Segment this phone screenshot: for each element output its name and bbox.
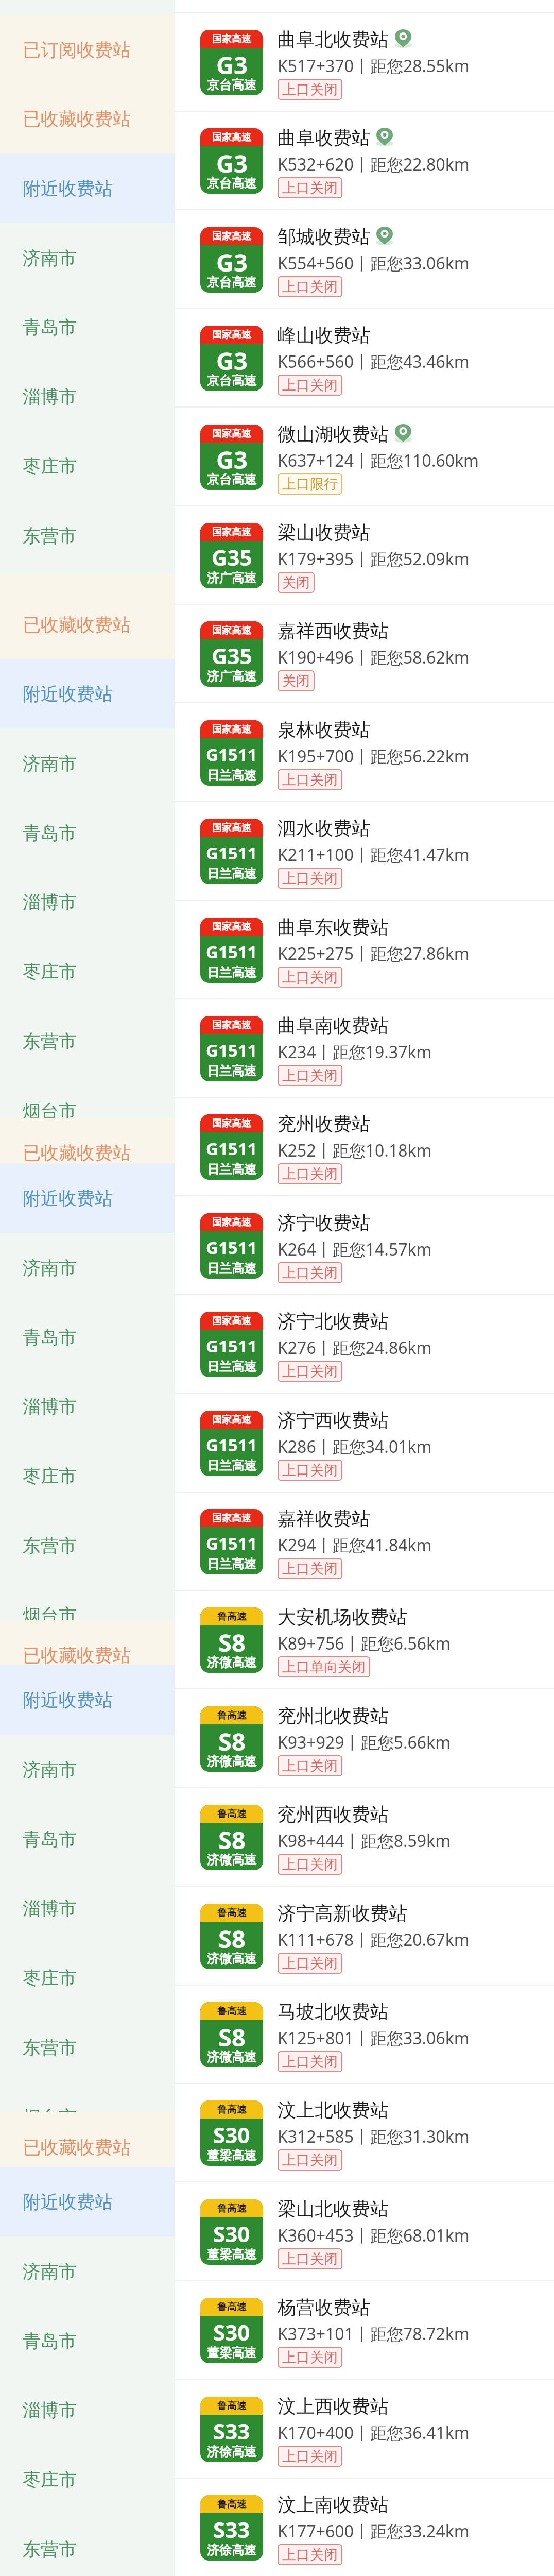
button[interactable]: 青岛市 <box>0 2306 175 2376</box>
button[interactable]: 已收藏收费站 <box>0 2112 175 2167</box>
button[interactable]: 鲁高速 <box>175 1788 554 1887</box>
button[interactable]: 淄博市 <box>0 867 175 937</box>
staticText: 济宁西收费站 <box>278 1409 389 1432</box>
staticText: 济南市 <box>23 752 77 775</box>
button[interactable]: 烟台市 <box>0 1580 175 1620</box>
button[interactable]: 济南市 <box>0 223 175 293</box>
button[interactable]: 淄博市 <box>0 1873 175 1943</box>
button[interactable]: 附近收费站 <box>0 154 175 223</box>
button[interactable]: 淄博市 <box>0 1371 175 1441</box>
staticText: 京台高速 <box>207 373 256 388</box>
button[interactable]: 国家高速 <box>175 1394 554 1493</box>
button[interactable]: 国家高速 <box>175 1493 554 1591</box>
button[interactable]: 国家高速 <box>175 408 554 506</box>
staticText: 上口关闭 <box>282 1165 338 1183</box>
button[interactable]: 济南市 <box>0 1233 175 1302</box>
button[interactable]: 青岛市 <box>0 292 175 362</box>
button[interactable]: 鲁高速 <box>175 1986 554 2084</box>
staticText: K373+101丨距您78.72km <box>278 2323 470 2345</box>
staticText: 国家高速 <box>212 428 251 440</box>
staticText: 上口关闭 <box>282 2250 338 2268</box>
staticText: K170+400丨距您36.41km <box>278 2421 470 2444</box>
button[interactable]: 枣庄市 <box>0 2445 175 2514</box>
staticText: 济微高速 <box>207 1852 256 1868</box>
button[interactable]: 东营市 <box>0 1006 175 1076</box>
staticText: 曲阜北收费站 <box>278 28 389 51</box>
button[interactable]: 东营市 <box>0 1511 175 1580</box>
button[interactable]: 枣庄市 <box>0 1441 175 1511</box>
button[interactable]: 附近收费站 <box>0 659 175 728</box>
button[interactable]: 国家高速 <box>175 1098 554 1196</box>
button[interactable]: 济南市 <box>0 2236 175 2306</box>
button[interactable]: 烟台市 <box>0 1076 175 1118</box>
staticText: 上口关闭 <box>282 81 338 98</box>
staticText: 上口关闭 <box>282 1757 338 1775</box>
button[interactable]: 国家高速 <box>175 1295 554 1394</box>
button[interactable]: 东营市 <box>0 501 175 570</box>
staticText: 上口关闭 <box>282 1264 338 1282</box>
button[interactable]: 国家高速 <box>175 13 554 112</box>
staticText: 大安机场收费站 <box>278 1605 407 1629</box>
button[interactable]: 国家高速 <box>175 1197 554 1295</box>
staticText: 济南市 <box>23 1758 77 1781</box>
button[interactable]: 已收藏收费站 <box>0 1118 175 1163</box>
staticText: 济徐高速 <box>207 2444 256 2460</box>
button[interactable]: 已收藏收费站 <box>0 84 175 154</box>
staticText: S30 <box>213 2219 250 2248</box>
button[interactable]: 鲁高速 <box>175 1690 554 1788</box>
button[interactable]: 鲁高速 <box>175 1591 554 1689</box>
staticText: 日兰高速 <box>207 1261 256 1276</box>
button[interactable]: 青岛市 <box>0 1302 175 1372</box>
button[interactable]: 淄博市 <box>0 362 175 431</box>
button[interactable]: 鲁高速 <box>175 2479 554 2576</box>
button[interactable]: 东营市 <box>0 2012 175 2082</box>
button[interactable]: 枣庄市 <box>0 1943 175 2012</box>
staticText: 京台高速 <box>207 472 256 487</box>
button[interactable]: 鲁高速 <box>175 1887 554 1986</box>
button[interactable]: 已收藏收费站 <box>0 1620 175 1665</box>
staticText: G1511 <box>206 1236 257 1259</box>
button[interactable]: 国家高速 <box>175 605 554 703</box>
staticText: 国家高速 <box>212 33 251 45</box>
button[interactable]: 国家高速 <box>175 506 554 605</box>
button[interactable]: 国家高速 <box>175 999 554 1098</box>
staticText: 上口关闭 <box>282 1560 338 1578</box>
button[interactable]: 已订阅收费站 <box>0 15 175 84</box>
staticText: 济微高速 <box>207 1754 256 1769</box>
staticText: 上口关闭 <box>282 278 338 296</box>
button[interactable]: 鲁高速 <box>175 2183 554 2281</box>
button[interactable]: 附近收费站 <box>0 1163 175 1233</box>
staticText: 曲阜东收费站 <box>278 916 389 939</box>
staticText: K517+370丨距您28.55km <box>278 55 470 77</box>
button[interactable]: 附近收费站 <box>0 2167 175 2236</box>
staticText: 国家高速 <box>212 1414 251 1426</box>
button[interactable]: 鲁高速 <box>175 2084 554 2182</box>
staticText: 鲁高速 <box>217 1709 247 1722</box>
button[interactable]: 国家高速 <box>175 112 554 210</box>
button[interactable]: 国家高速 <box>175 309 554 408</box>
staticText: 上口关闭 <box>282 1462 338 1479</box>
button[interactable]: 附近收费站 <box>0 1665 175 1735</box>
button[interactable]: 东营市 <box>0 2514 175 2576</box>
button[interactable]: 济南市 <box>0 728 175 798</box>
staticText: 京台高速 <box>207 275 256 290</box>
button[interactable]: 鲁高速 <box>175 2281 554 2380</box>
staticText: K190+496丨距您58.62km <box>278 646 470 669</box>
button[interactable]: 国家高速 <box>175 211 554 309</box>
staticText: G1511 <box>206 1532 257 1555</box>
button[interactable]: 烟台市 <box>0 2082 175 2112</box>
button[interactable]: 枣庄市 <box>0 431 175 501</box>
button[interactable]: 国家高速 <box>175 802 554 901</box>
button[interactable]: 淄博市 <box>0 2375 175 2445</box>
button[interactable]: 国家高速 <box>175 901 554 999</box>
button[interactable]: 已收藏收费站 <box>0 590 175 659</box>
button[interactable]: 青岛市 <box>0 798 175 868</box>
staticText: 梁山收费站 <box>278 521 370 544</box>
button[interactable]: 济南市 <box>0 1735 175 1804</box>
button[interactable]: 枣庄市 <box>0 937 175 1006</box>
button[interactable]: 国家高速 <box>175 704 554 802</box>
button[interactable]: 鲁高速 <box>175 2380 554 2479</box>
button[interactable]: 青岛市 <box>0 1804 175 1874</box>
